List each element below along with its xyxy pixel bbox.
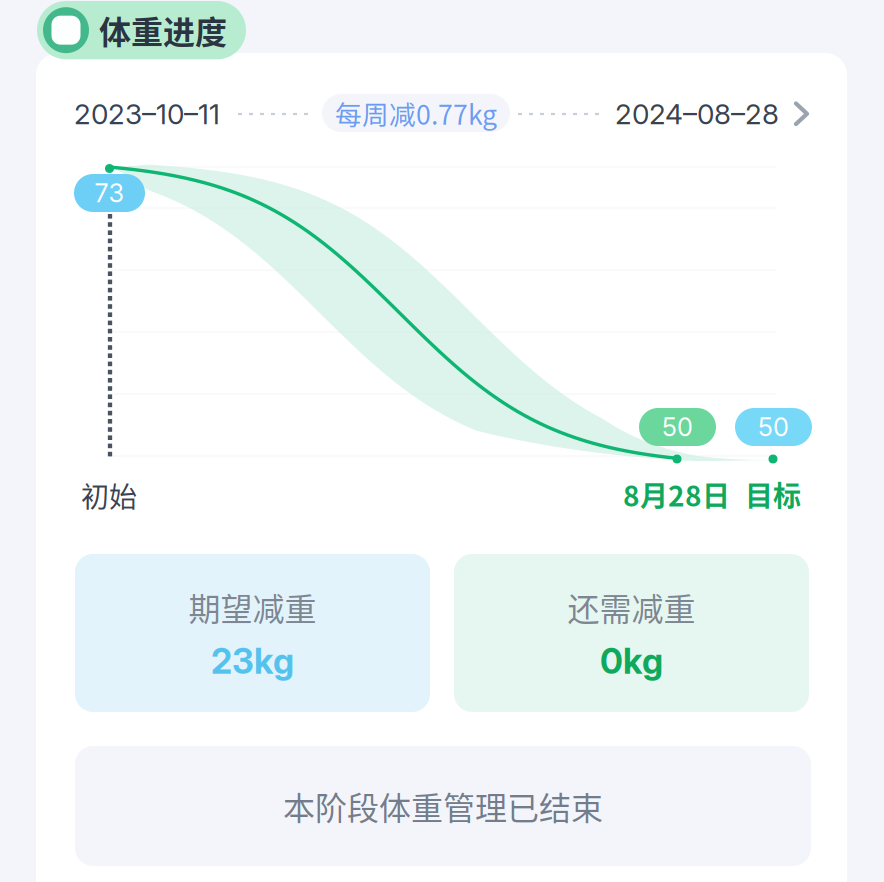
staticText: 每周减0.77kg [335, 94, 497, 132]
staticText: 73 [94, 178, 124, 208]
staticText: 50 [758, 412, 789, 442]
staticText: 8月28日 [623, 474, 730, 514]
staticText: 2024–08–28 [615, 97, 779, 131]
staticText: 50 [662, 412, 693, 442]
staticText: 体重进度 [99, 7, 227, 53]
button[interactable]: 每周减0.77kg [322, 94, 510, 132]
staticText: 0kg [600, 640, 663, 682]
staticText: 目标 [745, 474, 801, 514]
staticText: 期望减重 [188, 584, 316, 630]
button[interactable]: 还需减重 [454, 554, 809, 712]
staticText: 本阶段体重管理已结束 [283, 783, 603, 829]
button[interactable]: 体重进度 [37, 1, 246, 59]
button[interactable]: 期望减重 [75, 554, 430, 712]
staticText: 还需减重 [567, 584, 695, 630]
staticText: 初始 [81, 475, 137, 515]
button[interactable]: 2023–10–11 [74, 95, 224, 133]
staticText: 23kg [211, 640, 294, 682]
button[interactable]: 2024–08–28 [615, 95, 810, 133]
staticText: 2023–10–11 [74, 97, 220, 131]
